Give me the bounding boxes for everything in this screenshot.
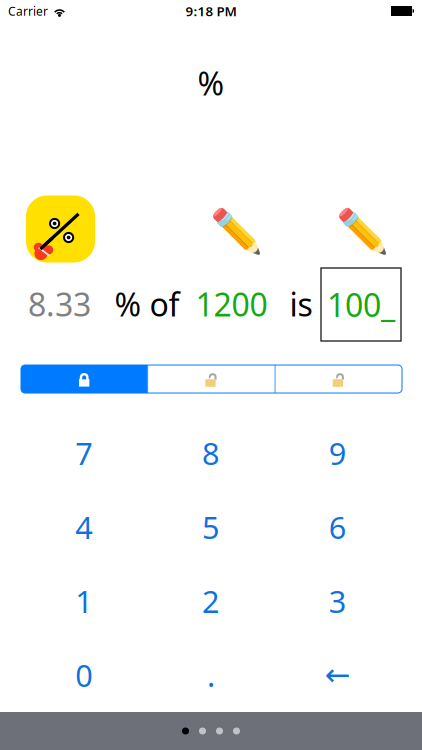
staticText: . <box>207 655 215 695</box>
staticText: 1 <box>75 581 93 621</box>
button[interactable]: Edit value <box>209 207 262 255</box>
staticText: ✏️ <box>209 207 262 255</box>
staticText: 5 <box>202 507 220 547</box>
button[interactable]: 8 <box>148 416 274 490</box>
staticText: 4 <box>75 507 93 547</box>
staticText: 8.33 <box>28 283 91 325</box>
button[interactable]: Edit result <box>335 207 388 255</box>
button[interactable]: 6 <box>274 490 401 564</box>
staticText: % <box>197 62 224 104</box>
button[interactable]: Value unlocked <box>148 365 275 393</box>
staticText: 2 <box>202 581 220 621</box>
button[interactable]: 100_ <box>321 268 401 341</box>
button[interactable]: Value unlocked <box>276 365 402 393</box>
button[interactable]: 1 <box>21 564 148 638</box>
staticText: 6 <box>329 507 347 547</box>
staticText: 8 <box>202 433 220 473</box>
staticText: 9 <box>329 433 347 473</box>
button[interactable]: 3 <box>274 564 401 638</box>
button[interactable]: ← <box>274 638 401 712</box>
button[interactable]: . <box>148 638 274 712</box>
button[interactable]: 5 <box>148 490 274 564</box>
staticText: 3 <box>329 581 347 621</box>
button[interactable]: Value locked <box>21 365 147 393</box>
staticText: ← <box>325 658 351 692</box>
button[interactable]: Percent calculator <box>26 195 95 262</box>
staticText: is <box>289 283 312 325</box>
staticText: 9:18 PM <box>185 2 236 20</box>
button[interactable]: 9 <box>274 416 401 490</box>
staticText: Carrier <box>8 3 48 19</box>
button[interactable]: 2 <box>148 564 274 638</box>
button[interactable]: 4 <box>21 490 148 564</box>
button[interactable]: 7 <box>21 416 148 490</box>
staticText: 1200 <box>195 283 267 325</box>
staticText: ✏️ <box>335 207 388 255</box>
button[interactable]: 0 <box>21 638 148 712</box>
staticText: % of <box>114 283 179 325</box>
staticText: 7 <box>75 433 93 473</box>
staticText: 0 <box>75 655 93 695</box>
staticText: 100_ <box>327 283 395 326</box>
